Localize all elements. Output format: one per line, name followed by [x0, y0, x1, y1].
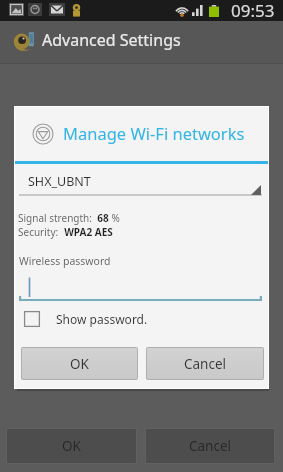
button[interactable]: OK	[7, 429, 136, 463]
other: Wi-Fi	[32, 123, 54, 145]
staticText: OK	[62, 437, 81, 455]
staticText: Wireless password	[19, 254, 111, 268]
staticText: Advanced Settings	[42, 29, 181, 51]
staticText: Security:	[18, 225, 59, 239]
button[interactable]	[19, 272, 262, 302]
staticText: OK	[70, 355, 89, 373]
button[interactable]: Cancel	[147, 348, 263, 379]
button[interactable]: SHX_UBNT	[19, 167, 262, 196]
staticText: Cancel	[189, 437, 232, 455]
staticText: WPA2 AES	[59, 225, 113, 239]
staticText: %	[109, 211, 120, 225]
staticText: 09:53	[231, 0, 275, 20]
button[interactable]: Cancel	[146, 429, 274, 463]
staticText: SHX_UBNT	[28, 173, 91, 190]
staticText: Manage Wi-Fi networks	[63, 122, 245, 144]
staticText: Show password.	[56, 311, 148, 327]
staticText: 68	[92, 211, 109, 225]
other: App icon	[13, 29, 37, 54]
button[interactable]: Show password.	[24, 308, 148, 330]
button[interactable]: OK	[22, 348, 137, 379]
staticText: Cancel	[184, 355, 227, 373]
staticText: Signal strength:	[18, 211, 92, 225]
